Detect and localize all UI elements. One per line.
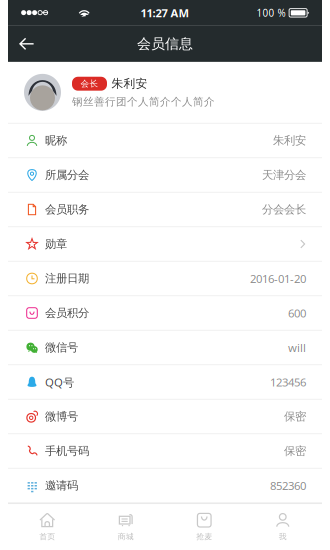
staticText: 所属分会 <box>45 168 89 182</box>
staticText: 昵称 <box>45 133 67 148</box>
staticText: 手机号码 <box>45 444 89 458</box>
staticText: will <box>288 340 306 355</box>
staticText: 朱利安 <box>111 76 147 91</box>
staticText: 微博号 <box>45 409 78 424</box>
button[interactable]: 会员积分 <box>8 296 322 331</box>
staticText: 注册日期 <box>45 271 89 286</box>
staticText: 100 % <box>257 6 286 19</box>
staticText: 钢丝善行团个人简介个人简介 <box>72 95 215 108</box>
staticText: QQ号 <box>45 374 74 390</box>
button[interactable]: 邀请码 <box>8 469 322 503</box>
staticText: 微信号 <box>45 340 78 355</box>
button[interactable]: QQ号 <box>8 365 322 400</box>
button[interactable]: 昵称 <box>8 124 322 158</box>
staticText: 123456 <box>270 374 306 390</box>
staticText: 我 <box>279 532 287 542</box>
button[interactable]: 注册日期 <box>8 262 322 296</box>
staticText: 会员职务 <box>45 202 89 217</box>
staticText: 保密 <box>284 409 306 424</box>
button[interactable]: 微博号 <box>8 400 322 434</box>
button[interactable]: Back <box>8 26 44 62</box>
staticText: 首页 <box>39 532 55 542</box>
button[interactable]: 会员职务 <box>8 193 322 227</box>
button[interactable]: 手机号码 <box>8 434 322 469</box>
button[interactable]: 勋章 <box>8 227 322 262</box>
button[interactable]: 商城 <box>86 504 165 550</box>
button[interactable]: 会长 <box>8 62 322 123</box>
staticText: 抢麦 <box>196 532 212 542</box>
staticText: 852360 <box>270 478 306 493</box>
staticText: 邀请码 <box>45 478 78 493</box>
staticText: 会员信息 <box>137 35 193 53</box>
staticText: 会员积分 <box>45 306 89 320</box>
staticText: 分会会长 <box>262 202 306 217</box>
button[interactable]: 微信号 <box>8 331 322 365</box>
staticText: 保密 <box>284 444 306 458</box>
button[interactable]: 首页 <box>8 504 86 550</box>
staticText: 商城 <box>118 532 134 542</box>
staticText: 会长 <box>80 78 98 89</box>
staticText: 勋章 <box>45 237 67 251</box>
staticText: 11:27 AM <box>140 5 189 20</box>
staticText: 2016-01-20 <box>250 271 306 286</box>
staticText: 天津分会 <box>262 168 306 182</box>
staticText: 朱利安 <box>273 133 306 148</box>
button[interactable]: 抢麦 <box>165 504 243 550</box>
staticText: 600 <box>288 305 306 321</box>
button[interactable]: 所属分会 <box>8 158 322 193</box>
button[interactable]: 我 <box>243 504 322 550</box>
